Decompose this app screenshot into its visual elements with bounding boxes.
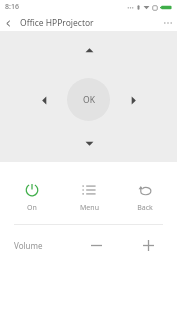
button[interactable]: On — [8, 179, 56, 215]
button[interactable]: Left — [31, 87, 57, 113]
button[interactable]: Volume up — [135, 232, 161, 258]
staticText: On — [27, 203, 37, 213]
button[interactable]: Down — [76, 130, 102, 156]
staticText: OK — [83, 94, 95, 106]
button[interactable]: More options — [159, 14, 177, 31]
staticText: Office HPProjector — [20, 17, 94, 29]
staticText: Menu — [80, 203, 99, 213]
button[interactable]: Menu — [65, 179, 113, 215]
button[interactable]: OK — [67, 78, 110, 121]
staticText: Back — [137, 203, 153, 213]
button[interactable]: Right — [120, 87, 146, 113]
button[interactable]: Volume down — [83, 232, 109, 258]
button[interactable]: Back — [0, 15, 16, 31]
button[interactable]: Up — [76, 37, 102, 63]
button[interactable]: Back — [121, 179, 169, 215]
staticText: Volume — [14, 240, 83, 251]
staticText: 8:16 — [5, 2, 19, 12]
